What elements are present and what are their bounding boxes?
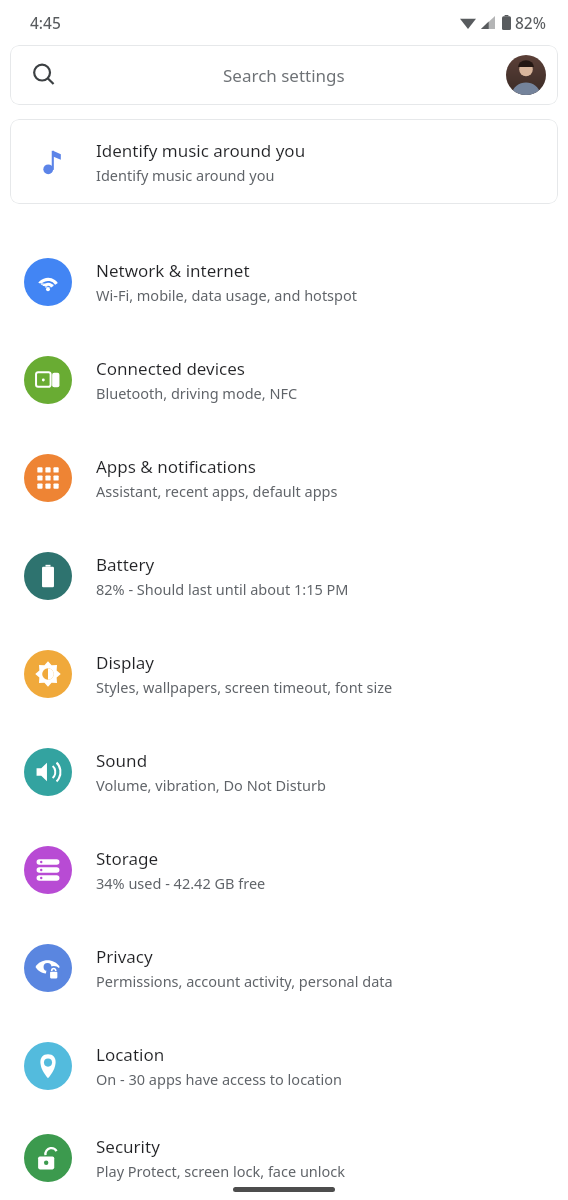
staticText: Privacy xyxy=(96,945,153,968)
staticText: Wi-Fi, mobile, data usage, and hotspot xyxy=(96,285,357,305)
staticText: Bluetooth, driving mode, NFC xyxy=(96,383,298,403)
staticText: Display xyxy=(96,651,154,674)
button[interactable]: Sound xyxy=(0,723,568,821)
button[interactable]: Identify music around you xyxy=(10,119,558,204)
staticText: Play Protect, screen lock, face unlock xyxy=(96,1161,346,1181)
button[interactable]: Account xyxy=(506,55,546,95)
button[interactable]: Network & internet xyxy=(0,233,568,331)
staticText: 34% used - 42.42 GB free xyxy=(96,873,266,893)
staticText: Storage xyxy=(96,847,159,870)
staticText: Sound xyxy=(96,749,148,772)
button[interactable]: Apps & notifications xyxy=(0,429,568,527)
staticText: Apps & notifications xyxy=(96,455,256,478)
staticText: Permissions, account activity, personal … xyxy=(96,971,393,991)
staticText: Assistant, recent apps, default apps xyxy=(96,481,338,501)
staticText: Volume, vibration, Do Not Disturb xyxy=(96,775,326,795)
staticText: Battery xyxy=(96,553,155,576)
staticText: Identify music around you xyxy=(96,165,275,185)
staticText: Location xyxy=(96,1043,165,1066)
button[interactable]: Battery xyxy=(0,527,568,625)
staticText: Identify music around you xyxy=(96,139,306,162)
button[interactable]: Display xyxy=(0,625,568,723)
button[interactable]: Security xyxy=(0,1115,568,1200)
button[interactable]: Privacy xyxy=(0,919,568,1017)
staticText: Security xyxy=(96,1135,160,1158)
staticText: On - 30 apps have access to location xyxy=(96,1069,342,1089)
staticText: 4:45 xyxy=(30,12,61,33)
staticText: 82% - Should last until about 1:15 PM xyxy=(96,579,349,599)
staticText: Styles, wallpapers, screen timeout, font… xyxy=(96,677,393,697)
staticText: Network & internet xyxy=(96,259,250,282)
staticText: 82% xyxy=(515,12,546,33)
button[interactable]: Location xyxy=(0,1017,568,1115)
button[interactable]: Connected devices xyxy=(0,331,568,429)
staticText: Connected devices xyxy=(96,357,246,380)
button[interactable]: Storage xyxy=(0,821,568,919)
other: Search xyxy=(32,63,56,87)
button[interactable]: Search xyxy=(10,45,558,105)
staticText: Search settings xyxy=(223,64,345,87)
